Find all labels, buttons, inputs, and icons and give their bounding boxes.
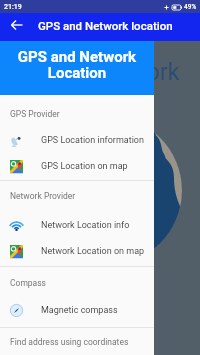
staticText: GPS and Network Location — [0, 48, 154, 82]
button[interactable]: GPS Location on map — [0, 158, 154, 174]
staticText: Network Provider — [10, 191, 76, 201]
staticText: GPS and Network location — [38, 19, 173, 32]
button[interactable]: GPS Location information — [0, 132, 154, 148]
staticText: Find address using coordinates — [10, 337, 129, 347]
staticText: GPS Location on map — [41, 161, 128, 172]
staticText: GPS Provider — [10, 109, 60, 119]
staticText: 49% — [184, 3, 197, 11]
staticText: GPS Location information — [41, 135, 144, 146]
staticText: Magnetic compass — [41, 305, 118, 316]
button[interactable]: Back — [0, 13, 28, 41]
button[interactable]: Network Location info — [0, 217, 154, 233]
staticText: Compass — [10, 278, 47, 288]
staticText: GPS and Network — [0, 59, 180, 86]
button[interactable]: Magnetic compass — [0, 302, 154, 318]
staticText: Network Location on map — [41, 246, 145, 257]
staticText: 21:19 — [4, 3, 22, 11]
staticText: Network Location info — [41, 220, 130, 231]
button[interactable]: Network Location on map — [0, 243, 154, 259]
